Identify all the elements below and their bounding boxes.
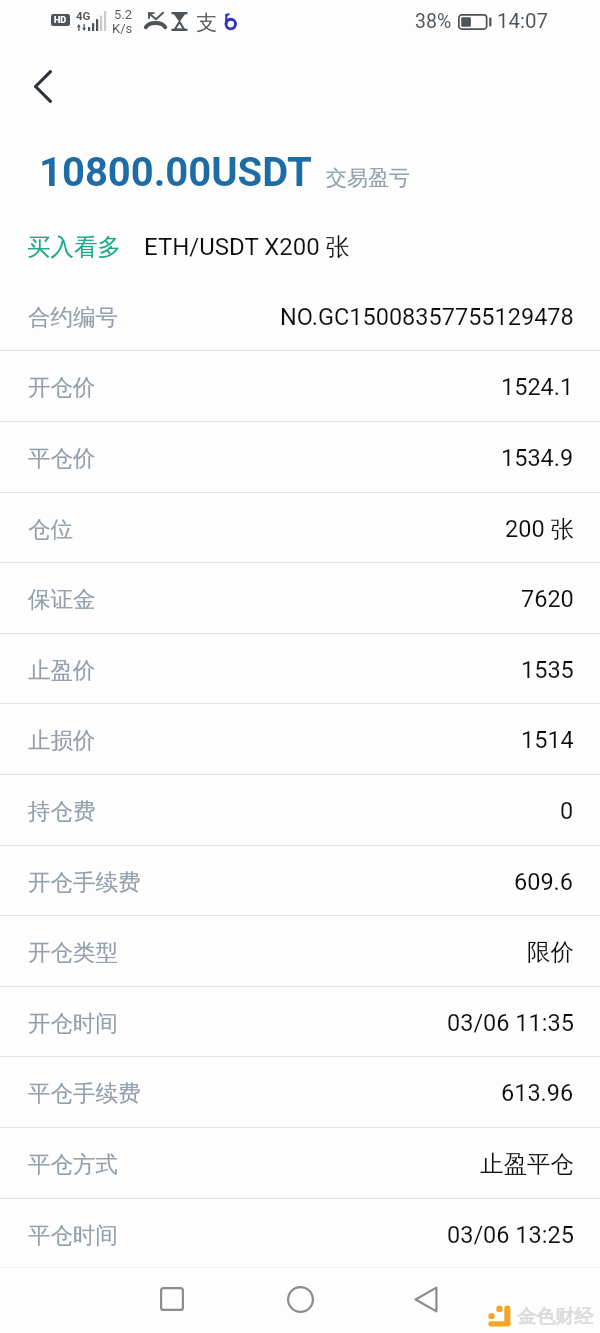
staticText: 平仓时间 <box>28 1221 118 1249</box>
staticText: 4G <box>76 9 91 22</box>
staticText: 仓位 <box>28 515 73 543</box>
button[interactable]: 平仓手续费 <box>0 1057 600 1128</box>
staticText: 持仓费 <box>28 797 96 825</box>
staticText: 开仓价 <box>28 373 96 401</box>
staticText: 200 张 <box>505 514 574 544</box>
staticText: 开仓手续费 <box>28 868 141 896</box>
staticText: 开仓时间 <box>28 1009 118 1037</box>
staticText: 1524.1 <box>501 373 574 401</box>
staticText: 1514 <box>521 726 574 754</box>
staticText: 03/06 13:25 <box>447 1221 574 1249</box>
staticText: 38% <box>415 10 452 33</box>
button[interactable]: Back <box>396 1269 456 1329</box>
button[interactable]: Recent apps <box>142 1269 202 1329</box>
button[interactable]: 开仓手续费 <box>0 846 600 917</box>
staticText: 平仓方式 <box>28 1150 118 1178</box>
button[interactable]: 平仓方式 <box>0 1128 600 1199</box>
staticText: 止损价 <box>28 726 96 754</box>
button[interactable]: 仓位 <box>0 493 600 564</box>
staticText: 止盈平仓 <box>480 1149 574 1179</box>
staticText: 合约编号 <box>28 303 118 331</box>
staticText: 买入看多 <box>27 232 121 262</box>
staticText: 1534.9 <box>501 444 574 472</box>
staticText: 03/06 11:35 <box>447 1009 574 1037</box>
staticText: HD <box>54 15 67 26</box>
button[interactable]: 合约编号 <box>0 281 600 352</box>
button[interactable]: 止损价 <box>0 704 600 775</box>
staticText: 609.6 <box>514 868 574 896</box>
staticText: 1535 <box>521 656 574 684</box>
staticText: 7620 <box>521 585 574 613</box>
staticText: ETH/USDT X200 张 <box>144 232 350 262</box>
button[interactable]: Home <box>270 1269 330 1329</box>
staticText: 5.2 <box>114 7 133 22</box>
button[interactable]: 持仓费 <box>0 775 600 846</box>
staticText: 保证金 <box>28 585 96 613</box>
staticText: 交易盈亏 <box>326 165 410 191</box>
staticText: 平仓手续费 <box>28 1079 141 1107</box>
staticText: 支 <box>196 10 217 36</box>
staticText: 止盈价 <box>28 656 96 684</box>
staticText: NO.GC15008357755129478 <box>280 303 574 331</box>
button[interactable]: 保证金 <box>0 563 600 634</box>
staticText: 金色财经 <box>517 1305 593 1329</box>
staticText: 14:07 <box>497 9 549 33</box>
staticText: 613.96 <box>501 1079 574 1107</box>
button[interactable]: 开仓价 <box>0 351 600 422</box>
button[interactable]: 平仓时间 <box>0 1199 600 1270</box>
button[interactable]: 平仓价 <box>0 422 600 493</box>
button[interactable]: Back <box>14 57 72 115</box>
button[interactable]: 开仓类型 <box>0 916 600 987</box>
staticText: K/s <box>112 21 133 36</box>
staticText: 平仓价 <box>28 444 96 472</box>
staticText: 10800.00USDT <box>39 149 312 196</box>
button[interactable]: 开仓时间 <box>0 987 600 1058</box>
staticText: 限价 <box>527 937 574 967</box>
staticText: 开仓类型 <box>28 938 118 966</box>
button[interactable]: 止盈价 <box>0 634 600 705</box>
staticText: 0 <box>560 797 574 825</box>
